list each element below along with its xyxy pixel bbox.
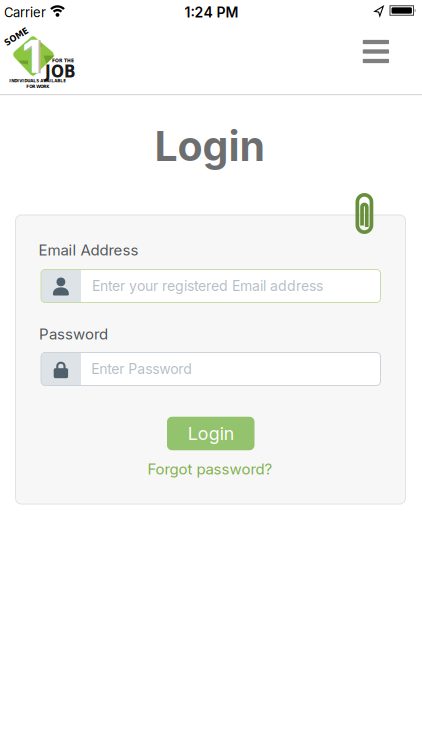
staticText: SOME bbox=[3, 31, 30, 42]
staticText: 1:24 PM bbox=[184, 4, 238, 21]
button[interactable]: Forgot password? bbox=[147, 460, 272, 478]
staticText: INDIVIDUALS AVAILABLE bbox=[9, 78, 66, 83]
staticText: 1 bbox=[22, 30, 41, 83]
staticText: Login bbox=[154, 122, 265, 170]
staticText: 1 bbox=[24, 30, 43, 83]
staticText: Enter Password bbox=[91, 361, 192, 377]
staticText: Enter your registered Email address bbox=[92, 278, 323, 294]
staticText: Login bbox=[188, 423, 234, 444]
staticText: Password bbox=[39, 325, 108, 343]
staticText: FOR WORK bbox=[26, 84, 49, 89]
staticText: Forgot password? bbox=[147, 460, 272, 478]
staticText: Carrier bbox=[4, 5, 46, 20]
button[interactable]: Menu bbox=[354, 31, 398, 71]
staticText: FOR THE bbox=[52, 58, 74, 63]
button[interactable]: Login bbox=[167, 417, 254, 450]
staticText: JOB bbox=[45, 62, 76, 81]
button[interactable]: Email Address bbox=[40, 269, 381, 303]
staticText: Email Address bbox=[38, 241, 138, 259]
button[interactable]: Password bbox=[40, 352, 381, 386]
